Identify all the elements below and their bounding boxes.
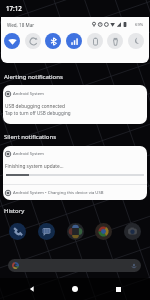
button[interactable]: Flashlight (107, 33, 123, 49)
button[interactable]: Auto-rotate (25, 33, 41, 49)
button[interactable]: Wi-Fi (4, 33, 20, 49)
staticText: Alerting notifications (4, 73, 63, 81)
other: Voice search (131, 263, 137, 269)
staticText: Silent notifications (4, 133, 57, 141)
staticText: 17:12 (6, 4, 22, 12)
button[interactable]: Home (64, 278, 86, 300)
button[interactable]: Android System • Charging this device vi… (3, 185, 147, 200)
staticText: USB debugging connected (5, 103, 65, 110)
button[interactable]: Messages (38, 223, 55, 240)
button[interactable]: Recent apps (107, 278, 129, 300)
button[interactable]: Chrome (95, 223, 112, 240)
staticText: Tap to turn off USB debugging (5, 110, 71, 116)
staticText: Android System (13, 151, 44, 157)
button[interactable]: Phone (9, 223, 26, 240)
button[interactable]: Android System (3, 85, 147, 124)
staticText: Android System • Charging this device vi… (13, 190, 104, 196)
button[interactable]: Android System (3, 146, 147, 184)
staticText: Android System (13, 91, 44, 97)
button[interactable]: Back (21, 278, 43, 300)
button[interactable]: Bluetooth (45, 33, 61, 49)
button[interactable]: Do Not Disturb (128, 33, 144, 49)
button[interactable]: Photos (67, 223, 84, 240)
staticText: History (4, 207, 25, 215)
staticText: Finishing system update… (5, 163, 64, 170)
staticText: Wed, 18 Mar (7, 22, 35, 28)
button[interactable]: Camera (124, 223, 141, 240)
button[interactable]: Voice search (8, 259, 141, 272)
button[interactable]: Battery Saver (87, 33, 103, 49)
staticText: 69% (135, 22, 144, 28)
button[interactable]: Mobile data (66, 33, 82, 49)
